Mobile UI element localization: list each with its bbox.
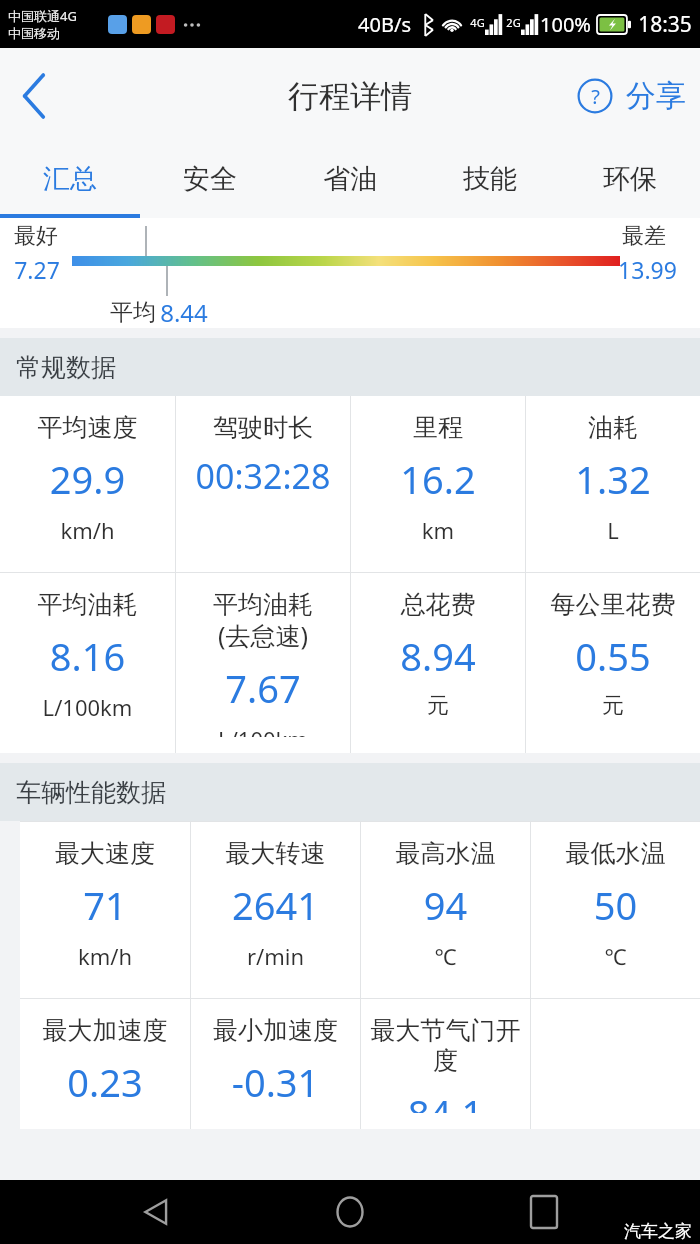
button[interactable]: ? — [577, 77, 686, 115]
staticText: 中国联通4G — [8, 7, 77, 25]
staticText: 总花费 — [351, 589, 525, 620]
staticText: 8.94 — [351, 630, 525, 682]
staticText: 最大节气门开度 — [361, 1015, 530, 1077]
button[interactable]: 平均油耗 — [0, 573, 175, 738]
staticText: L/100km — [0, 692, 175, 722]
staticText: 技能 — [463, 162, 517, 196]
staticText: 100% — [540, 11, 591, 38]
staticText: 4G — [470, 15, 485, 30]
staticText: 2641 — [191, 879, 360, 931]
button[interactable]: 最高水温 — [361, 822, 530, 987]
staticText: 平均 — [110, 298, 156, 327]
staticText: 0.23 — [20, 1056, 190, 1108]
button[interactable]: Back — [0, 61, 70, 131]
staticText: 平均速度 — [0, 412, 175, 443]
staticText: 1.32 — [526, 453, 700, 505]
button[interactable]: 平均速度 — [0, 396, 175, 561]
staticText: 7.67 — [176, 662, 350, 714]
staticText: km — [351, 515, 525, 545]
staticText: 省油 — [323, 162, 377, 196]
button[interactable]: 总花费 — [351, 573, 525, 736]
staticText: 最高水温 — [361, 838, 530, 869]
staticText: 安全 — [183, 162, 237, 196]
staticText: 油耗 — [526, 412, 700, 443]
staticText: 71 — [20, 879, 190, 931]
staticText: 94 — [361, 879, 530, 931]
staticText: 汽车之家 — [624, 1221, 692, 1242]
staticText: 50 — [531, 879, 700, 931]
staticText: 16.2 — [351, 453, 525, 505]
button[interactable]: 最大节气门开度 — [361, 999, 530, 1129]
button[interactable]: 省油 — [280, 144, 420, 214]
button[interactable]: 环保 — [560, 144, 700, 214]
staticText: 每公里花费 — [526, 589, 700, 620]
button[interactable]: Back — [130, 1186, 182, 1238]
staticText: 平均油耗 (去怠速) — [176, 589, 350, 652]
staticText: 40B/s — [358, 11, 411, 38]
button[interactable]: 汇总 — [0, 144, 140, 214]
button[interactable]: 最大加速度 — [20, 999, 190, 1129]
staticText: ℃ — [531, 941, 700, 971]
staticText: 环保 — [603, 162, 657, 196]
staticText: 分享 — [626, 77, 686, 115]
staticText: 最大加速度 — [20, 1015, 190, 1046]
staticText: 最低水温 — [531, 838, 700, 869]
staticText: ? — [591, 83, 600, 110]
button[interactable]: 最大速度 — [20, 822, 190, 987]
staticText: 驾驶时长 — [176, 412, 350, 443]
button[interactable]: 最大转速 — [191, 822, 360, 987]
staticText: km/h — [0, 515, 175, 545]
staticText: 8.16 — [0, 630, 175, 682]
button[interactable]: 每公里花费 — [526, 573, 700, 736]
staticText: 00:32:28 — [176, 453, 350, 499]
staticText: 元 — [351, 692, 525, 720]
staticText: L — [526, 515, 700, 545]
staticText: km/h — [20, 941, 190, 971]
staticText: 13.99 — [618, 254, 677, 285]
staticText: 最小加速度 — [191, 1015, 360, 1046]
button[interactable]: 驾驶时长 — [176, 396, 350, 555]
staticText: 车辆性能数据 — [16, 777, 166, 808]
staticText: 最大转速 — [191, 838, 360, 869]
staticText: 里程 — [351, 412, 525, 443]
staticText: 最大速度 — [20, 838, 190, 869]
staticText: 84.1 — [361, 1087, 530, 1113]
staticText: 2G — [506, 15, 521, 30]
staticText: 汇总 — [43, 162, 97, 196]
staticText: 最好 — [14, 222, 58, 250]
button[interactable]: 安全 — [140, 144, 280, 214]
button[interactable]: 技能 — [420, 144, 560, 214]
button[interactable]: Home — [324, 1186, 376, 1238]
staticText: ℃ — [361, 941, 530, 971]
button[interactable]: Recents — [518, 1186, 570, 1238]
staticText: 行程详情 — [288, 77, 412, 116]
staticText: 最差 — [622, 222, 666, 250]
staticText: L/100km — [176, 724, 350, 737]
button[interactable]: 油耗 — [526, 396, 700, 561]
staticText: 7.27 — [14, 254, 60, 285]
staticText: r/min — [191, 941, 360, 971]
staticText: 常规数据 — [16, 352, 116, 383]
button[interactable]: 最低水温 — [531, 822, 700, 987]
staticText: 29.9 — [0, 453, 175, 505]
staticText: 平均油耗 — [0, 589, 175, 620]
button[interactable]: 平均油耗 (去怠速) — [176, 573, 350, 753]
staticText: 0.55 — [526, 630, 700, 682]
staticText: 18:35 — [638, 10, 692, 39]
button[interactable]: 最小加速度 — [191, 999, 360, 1129]
staticText: -0.31 — [191, 1056, 360, 1108]
staticText: 中国移动 — [8, 25, 60, 41]
button[interactable]: 里程 — [351, 396, 525, 561]
staticText: 8.44 — [160, 296, 208, 329]
staticText: 元 — [526, 692, 700, 720]
